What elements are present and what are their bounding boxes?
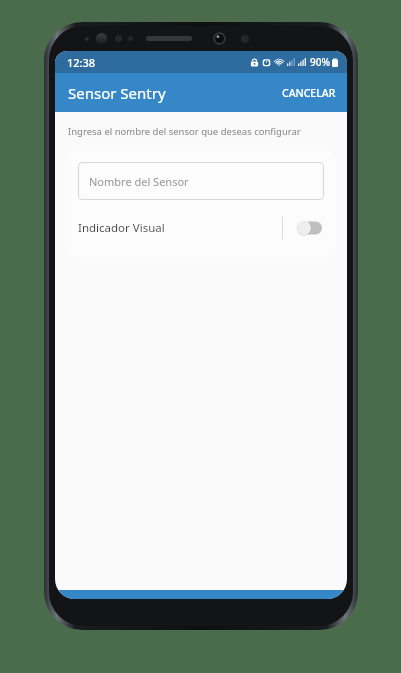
button[interactable]: Indicador Visual [78,213,324,243]
staticText: Sensor Sentry [68,83,166,103]
staticText: 90% [310,55,330,69]
staticText: Nombre del Sensor [89,174,189,189]
staticText: Indicador Visual [78,220,165,236]
staticText: CANCELAR [282,86,336,100]
button[interactable]: Nombre del Sensor [78,162,324,200]
button[interactable]: Indicador Visual toggle [296,220,322,236]
staticText: 12:38 [67,55,96,70]
staticText: Ingresa el nombre del sensor que deseas … [68,125,301,138]
button[interactable]: CANCELAR [271,78,347,108]
